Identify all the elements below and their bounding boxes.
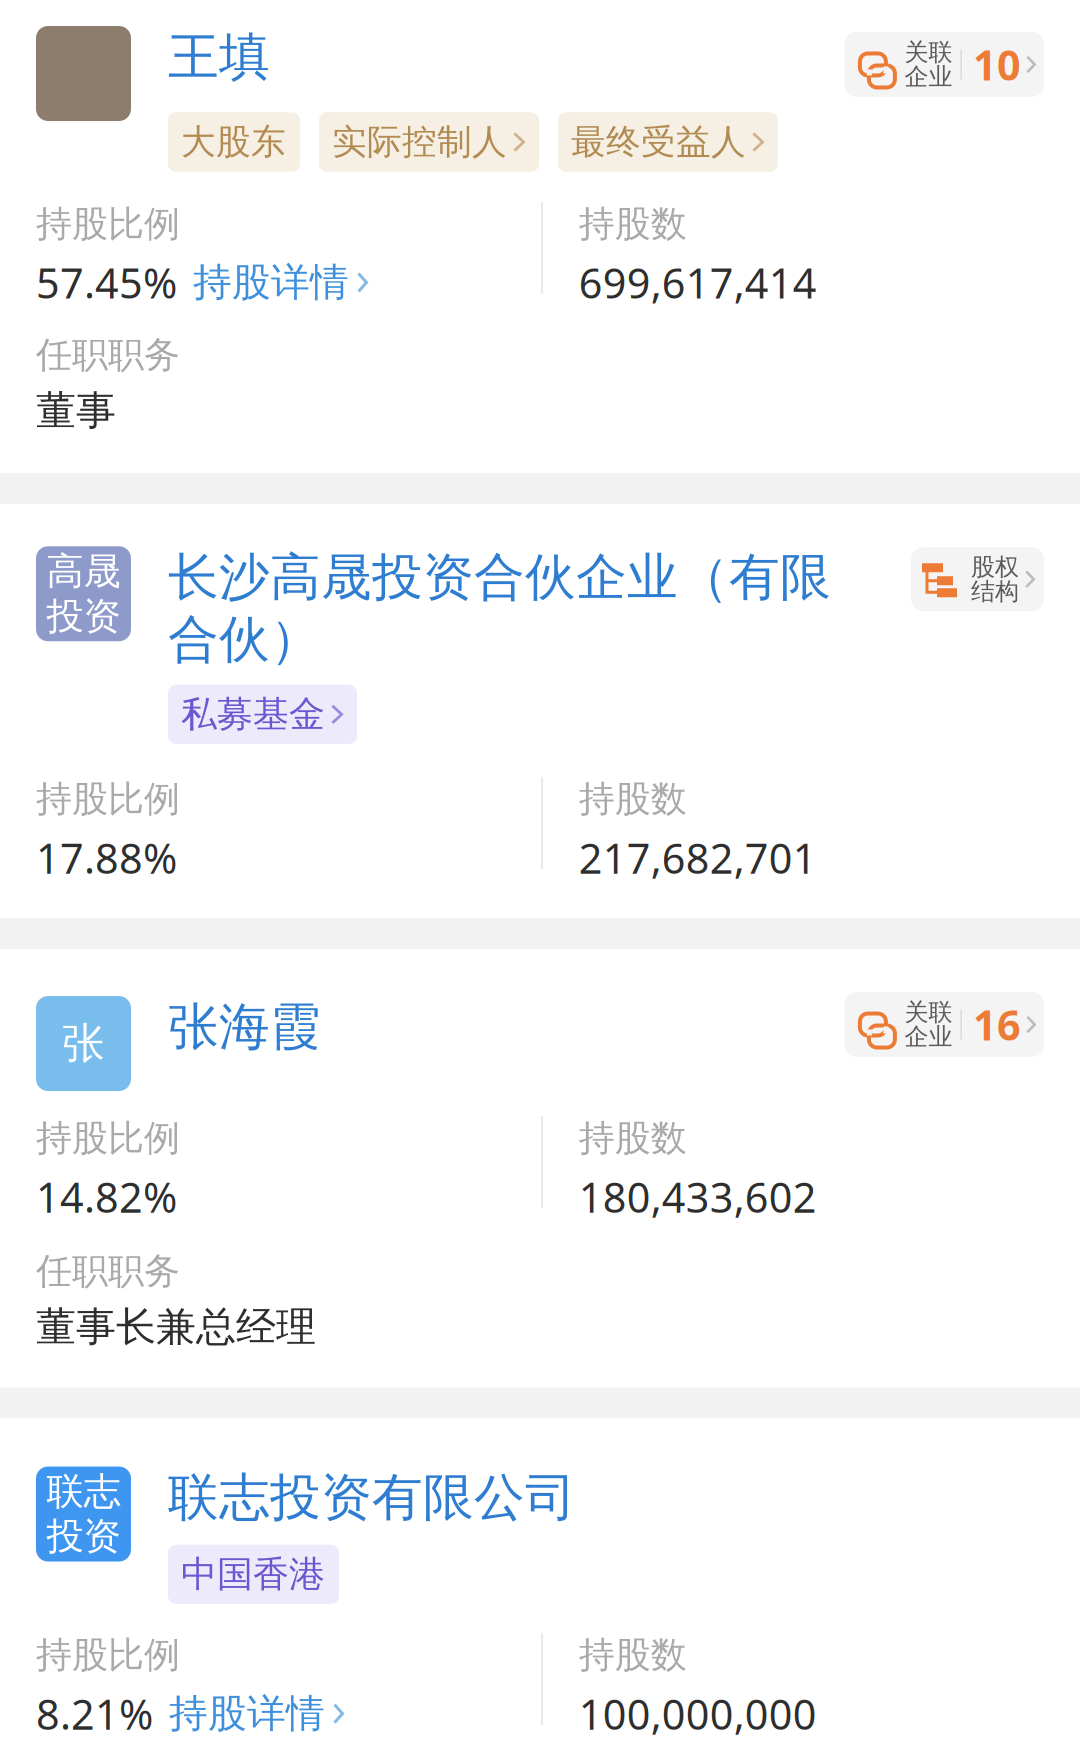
button[interactable]: 关联企业 16 [844, 992, 1044, 1057]
button[interactable]: 联志投资有限公司 [168, 1466, 576, 1529]
staticText: 联志投资有限公司 [168, 1466, 576, 1529]
staticText: 持股数 [579, 777, 687, 821]
button[interactable]: 中国香港 [168, 1545, 339, 1604]
staticText: 57.45% [36, 255, 177, 310]
staticText: 持股比例 [36, 777, 180, 821]
staticText: 联志 [46, 1469, 120, 1515]
staticText: 任职职务 [36, 1249, 180, 1293]
button[interactable]: 关联企业 10 [844, 32, 1044, 97]
staticText: 私募基金 [181, 692, 325, 736]
button[interactable]: 王填 [168, 26, 270, 88]
staticText: 699,617,414 [579, 255, 817, 310]
staticText: 17.88% [36, 830, 177, 885]
button[interactable]: 最终受益人 [558, 112, 778, 172]
button[interactable]: 长沙高晟投资合伙企业（有限合伙） [168, 546, 838, 671]
staticText: 100,000,000 [579, 1686, 817, 1741]
staticText: 最终受益人 [571, 121, 746, 163]
staticText: 王填 [168, 26, 270, 88]
button[interactable]: 张海霞 [168, 996, 321, 1058]
staticText: 张 [62, 1017, 105, 1070]
staticText: 企业 [904, 1022, 952, 1051]
staticText: 董事长兼总经理 [36, 1302, 316, 1351]
staticText: 持股数 [579, 202, 687, 246]
staticText: 股权 [971, 552, 1019, 582]
staticText: 180,433,602 [579, 1169, 817, 1224]
staticText: 张海霞 [168, 996, 321, 1058]
staticText: 持股比例 [36, 1116, 180, 1160]
staticText: 关联 [904, 37, 952, 67]
staticText: 217,682,701 [579, 830, 817, 885]
staticText: 持股比例 [36, 202, 180, 246]
button[interactable]: 股权结构 [911, 547, 1044, 611]
staticText: 长沙高晟投资合伙企业（有限合伙） [168, 546, 831, 671]
staticText: 持股详情 [193, 259, 349, 306]
staticText: 企业 [904, 62, 952, 91]
staticText: 持股数 [579, 1116, 687, 1160]
staticText: 投资 [46, 593, 120, 639]
button[interactable]: 持股详情 [169, 1690, 344, 1737]
staticText: 中国香港 [181, 1552, 325, 1596]
staticText: 14.82% [36, 1169, 177, 1224]
staticText: 实际控制人 [332, 121, 507, 163]
staticText: 8.21% [36, 1686, 153, 1741]
button[interactable]: 大股东 [168, 112, 300, 172]
staticText: 高晟 [46, 548, 120, 594]
button[interactable]: 实际控制人 [319, 112, 539, 172]
button[interactable]: 私募基金 [168, 685, 357, 744]
staticText: 投资 [46, 1513, 120, 1559]
staticText: 持股数 [579, 1633, 687, 1677]
staticText: 关联 [904, 997, 952, 1027]
staticText: 董事 [36, 386, 116, 435]
staticText: 持股比例 [36, 1633, 180, 1677]
staticText: 结构 [971, 577, 1019, 606]
button[interactable]: 持股详情 [193, 259, 368, 306]
staticText: 大股东 [181, 121, 286, 163]
staticText: 16 [973, 997, 1021, 1052]
staticText: 10 [973, 37, 1021, 92]
staticText: 持股详情 [169, 1690, 325, 1737]
staticText: 任职职务 [36, 333, 180, 377]
